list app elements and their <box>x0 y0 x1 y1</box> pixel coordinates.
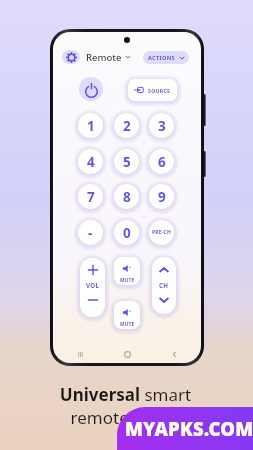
button[interactable]: Recents <box>72 346 88 362</box>
button[interactable]: Mute <box>114 301 140 329</box>
staticText: ACTIONS <box>148 54 175 62</box>
staticText: 7 <box>87 188 95 206</box>
staticText: 1 <box>87 117 95 135</box>
staticText: 8 <box>123 188 131 206</box>
staticText: CH <box>159 281 169 289</box>
button[interactable]: 1 <box>78 113 103 138</box>
staticText: 3 <box>158 117 166 135</box>
staticText: Remote <box>86 51 122 64</box>
staticText: 6 <box>158 153 166 171</box>
button[interactable]: Mute <box>114 257 140 285</box>
button[interactable]: ACTIONS <box>143 51 189 64</box>
staticText: PRE-CH <box>152 229 172 236</box>
staticText: 5 <box>123 153 131 171</box>
button[interactable]: 5 <box>114 149 139 174</box>
staticText: VOL <box>86 281 100 289</box>
button[interactable]: Channel <box>152 257 176 314</box>
staticText: Universal smart <box>0 383 252 406</box>
button[interactable]: 0 <box>114 220 139 245</box>
staticText: 4 <box>87 153 95 171</box>
staticText: MUTE <box>120 277 135 284</box>
button[interactable]: 3 <box>149 113 174 138</box>
staticText: 0 <box>123 224 131 242</box>
button[interactable]: Volume <box>80 258 105 317</box>
staticText: 2 <box>123 117 131 135</box>
button[interactable]: SOURCE <box>128 79 177 101</box>
staticText: remote for TV <box>0 406 252 429</box>
button[interactable]: 6 <box>149 149 174 174</box>
button[interactable]: PRE-CH <box>149 220 174 245</box>
button[interactable]: 7 <box>78 184 103 209</box>
button[interactable]: Remote <box>61 49 132 65</box>
button[interactable]: Home <box>119 346 135 362</box>
button[interactable]: 2 <box>114 113 139 138</box>
staticText: SOURCE <box>148 87 171 94</box>
button[interactable]: Back <box>166 346 182 362</box>
staticText: - <box>88 224 93 242</box>
button[interactable]: 4 <box>78 149 103 174</box>
staticText: MYAPKS.COM <box>125 416 253 441</box>
staticText: MUTE <box>120 321 135 328</box>
button[interactable]: 9 <box>149 184 174 209</box>
button[interactable]: Power <box>79 77 103 101</box>
button[interactable]: 8 <box>114 184 139 209</box>
button[interactable]: - <box>78 220 103 245</box>
staticText: 9 <box>158 188 166 206</box>
